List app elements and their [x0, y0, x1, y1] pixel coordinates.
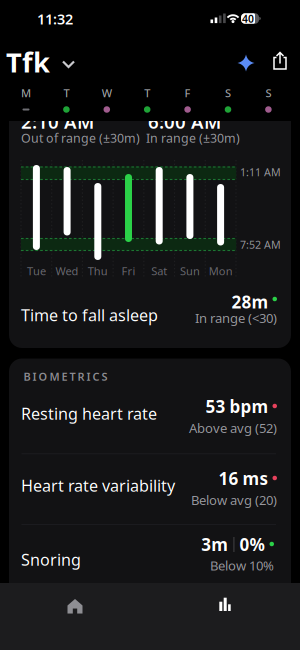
button[interactable]: S: [251, 84, 285, 117]
staticText: 40: [242, 12, 254, 26]
button[interactable]: Resting heart rate: [9, 381, 291, 446]
staticText: Tue: [27, 263, 46, 279]
staticText: 11:32: [37, 9, 73, 29]
staticText: M: [21, 85, 31, 101]
staticText: 2:10 AM: [21, 109, 94, 134]
staticText: Resting heart rate: [21, 402, 157, 424]
staticText: Fri: [121, 263, 135, 279]
staticText: Sun: [180, 263, 200, 279]
staticText: Below 10%: [210, 557, 274, 574]
button[interactable]: S: [211, 84, 245, 117]
button[interactable]: M: [9, 84, 43, 117]
staticText: In range (±30m): [146, 130, 240, 146]
staticText: Tfk: [6, 43, 50, 81]
button[interactable]: W: [90, 84, 124, 117]
staticText: Out of range (±30m): [21, 130, 140, 146]
staticText: B I O M E T R I C S: [23, 369, 107, 384]
staticText: W: [102, 85, 112, 101]
staticText: Mon: [209, 263, 233, 279]
staticText: T: [144, 85, 150, 101]
staticText: In range (<30): [195, 309, 277, 327]
button[interactable]: Snoring: [9, 527, 291, 585]
button[interactable]: Heart rate variability: [9, 453, 291, 518]
button[interactable]: [45, 586, 105, 626]
staticText: 6:00 AM: [148, 109, 221, 134]
button[interactable]: [195, 586, 255, 626]
staticText: 53 bpm: [205, 395, 268, 418]
button[interactable]: Tfk: [6, 44, 116, 80]
staticText: F: [185, 85, 191, 101]
staticText: 16 ms: [218, 467, 268, 490]
staticText: 28m: [231, 290, 268, 314]
staticText: Time to fall asleep: [21, 304, 158, 326]
staticText: 7:52 AM: [240, 237, 281, 252]
staticText: Below avg (20): [191, 491, 277, 509]
button[interactable]: Time to fall asleep: [9, 288, 291, 346]
staticText: S: [225, 85, 231, 101]
button[interactable]: F: [171, 84, 205, 117]
button[interactable]: [234, 51, 258, 75]
button[interactable]: T: [130, 84, 164, 117]
staticText: Thu: [88, 263, 108, 279]
button[interactable]: [268, 50, 292, 74]
staticText: Sat: [151, 263, 167, 279]
staticText: Snoring: [21, 548, 81, 570]
staticText: 3m: [201, 533, 228, 556]
staticText: Above avg (52): [189, 419, 277, 437]
staticText: 1:11 AM: [240, 165, 281, 179]
staticText: 0%: [239, 533, 264, 556]
staticText: Heart rate variability: [21, 474, 175, 496]
staticText: S: [265, 85, 271, 101]
staticText: Wed: [56, 263, 79, 279]
button[interactable]: T: [49, 84, 83, 117]
staticText: T: [63, 85, 69, 101]
